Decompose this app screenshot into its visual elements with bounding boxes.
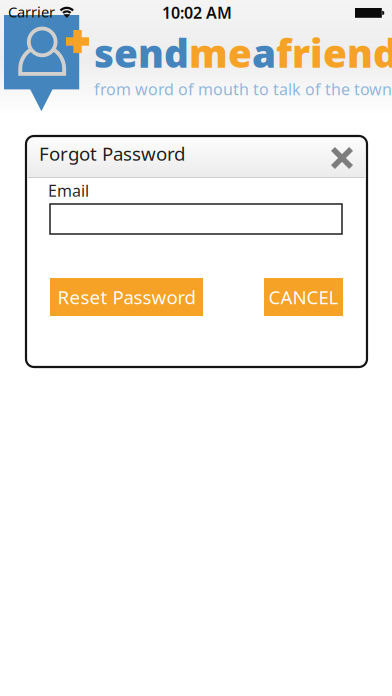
- staticText: friend: [276, 27, 392, 78]
- button[interactable]: Close: [325, 141, 359, 175]
- staticText: 10:02 AM: [162, 2, 232, 23]
- button[interactable]: Reset Password: [50, 278, 203, 316]
- staticText: Carrier: [8, 2, 55, 21]
- staticText: me: [189, 27, 252, 78]
- button[interactable]: CANCEL: [264, 278, 343, 316]
- staticText: CANCEL: [268, 285, 338, 309]
- staticText: Email: [48, 180, 89, 201]
- staticText: Reset Password: [57, 285, 195, 309]
- staticText: a: [252, 27, 276, 78]
- staticText: Forgot Password: [39, 141, 185, 166]
- staticText: send: [94, 27, 189, 78]
- staticText: from word of mouth to talk of the town: [94, 78, 392, 99]
